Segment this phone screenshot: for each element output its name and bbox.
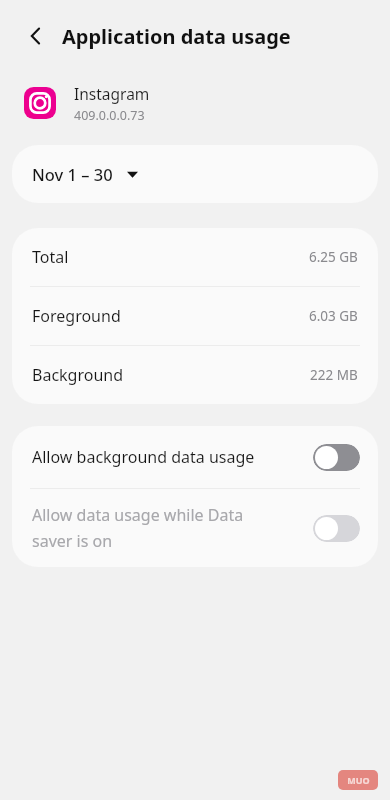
staticText: 6.03 GB (309, 307, 358, 325)
staticText: 222 MB (310, 366, 358, 384)
staticText: 6.25 GB (309, 248, 358, 266)
button[interactable]: Toggle off (313, 444, 360, 471)
button[interactable]: Allow background data usage (12, 426, 378, 488)
staticText: Total (32, 246, 69, 268)
staticText: Background (32, 364, 124, 386)
staticText: MUO (347, 774, 370, 786)
button[interactable]: Background (12, 346, 378, 404)
staticText: saver is on (32, 530, 113, 552)
button[interactable]: Back (14, 14, 58, 58)
staticText: Foreground (32, 305, 121, 327)
staticText: Allow data usage while Data (32, 504, 244, 526)
button[interactable]: Toggle disabled (313, 515, 360, 542)
button[interactable]: Nov 1 – 30 (12, 145, 378, 203)
staticText: Nov 1 – 30 (32, 163, 113, 185)
staticText: Instagram (74, 83, 150, 104)
staticText: 409.0.0.0.73 (74, 107, 145, 124)
button[interactable]: Foreground (12, 287, 378, 345)
button[interactable]: Allow data usage while Data (12, 489, 378, 567)
staticText: Application data usage (62, 23, 291, 50)
staticText: Allow background data usage (32, 446, 255, 468)
button[interactable]: Total (12, 228, 378, 286)
